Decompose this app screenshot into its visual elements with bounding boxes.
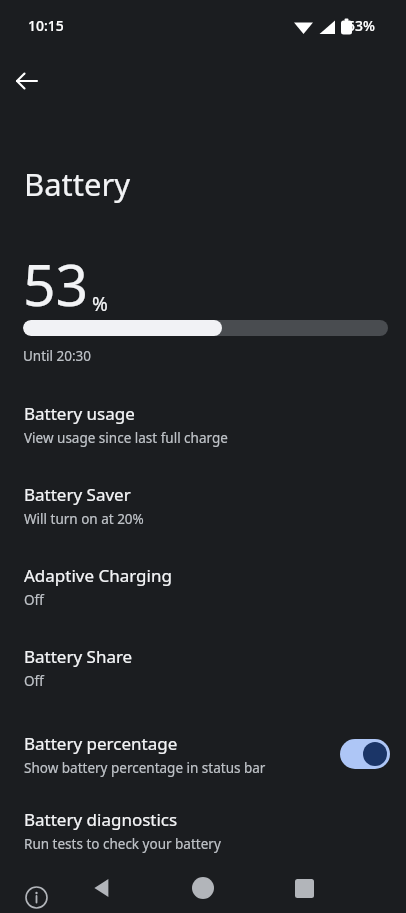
staticText: Off <box>24 672 44 690</box>
staticText: Battery diagnostics <box>24 808 178 831</box>
button[interactable]: Back <box>79 865 125 911</box>
staticText: 10:15 <box>28 16 64 35</box>
button[interactable]: Battery usage <box>0 398 406 458</box>
staticText: 53 <box>23 245 89 323</box>
button[interactable]: Adaptive Charging <box>0 560 406 620</box>
staticText: Run tests to check your battery <box>24 835 221 853</box>
button[interactable]: Battery Saver <box>0 479 406 539</box>
button[interactable]: Info <box>13 874 59 913</box>
button[interactable]: Battery diagnostics <box>0 804 406 864</box>
button[interactable]: Back <box>3 57 51 105</box>
staticText: View usage since last full charge <box>24 429 228 447</box>
staticText: 53% <box>347 16 375 35</box>
staticText: Adaptive Charging <box>24 564 172 587</box>
staticText: Show battery percentage in status bar <box>24 759 266 777</box>
staticText: Until 20:30 <box>23 347 92 365</box>
staticText: Battery percentage <box>24 732 178 755</box>
button[interactable]: Battery Share <box>0 641 406 701</box>
staticText: Battery usage <box>24 402 135 425</box>
staticText: Battery Saver <box>24 483 131 506</box>
staticText: Battery Share <box>24 645 133 668</box>
button[interactable]: Recent apps <box>281 865 327 911</box>
staticText: Off <box>24 591 44 609</box>
staticText: Battery <box>24 163 131 205</box>
button[interactable]: Battery percentage toggle <box>340 739 390 769</box>
staticText: Will turn on at 20% <box>24 510 144 528</box>
button[interactable]: Battery percentage <box>0 723 406 785</box>
staticText: % <box>92 291 108 317</box>
button[interactable]: Home <box>180 865 226 911</box>
